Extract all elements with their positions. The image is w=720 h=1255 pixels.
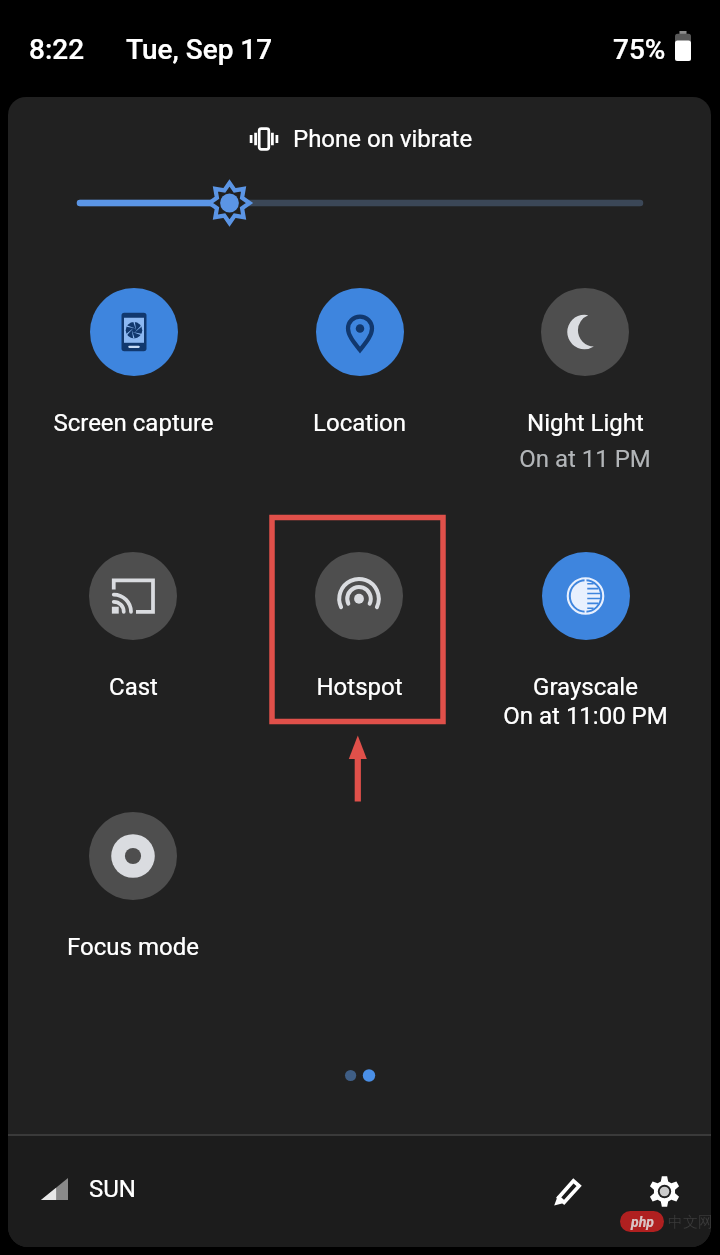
- staticText: Focus mode: [67, 933, 199, 961]
- button[interactable]: Cast: [20, 552, 246, 732]
- staticText: Grayscale: [533, 673, 638, 701]
- staticText: On at 11:00 PM: [503, 702, 668, 730]
- button[interactable]: Hotspot: [246, 552, 472, 732]
- staticText: Tue, Sep 17: [126, 33, 273, 66]
- button[interactable]: Night Light: [472, 288, 698, 468]
- button[interactable]: Grayscale: [472, 552, 698, 732]
- button[interactable]: Edit tiles: [538, 1161, 598, 1221]
- button[interactable]: Screen capture: [20, 288, 246, 468]
- staticText: 中文网: [668, 1213, 711, 1232]
- staticText: SUN: [89, 1175, 136, 1203]
- staticText: Night Light: [527, 409, 644, 437]
- button[interactable]: Location: [246, 288, 472, 468]
- staticText: Location: [313, 409, 406, 437]
- staticText: 8:22: [29, 33, 85, 66]
- staticText: 75%: [613, 33, 666, 66]
- staticText: Phone on vibrate: [293, 125, 473, 153]
- staticText: php: [631, 1214, 654, 1230]
- staticText: Cast: [109, 673, 158, 701]
- button[interactable]: Focus mode: [20, 812, 246, 992]
- button[interactable]: Settings: [634, 1161, 694, 1221]
- staticText: Hotspot: [316, 673, 403, 701]
- staticText: On at 11 PM: [519, 445, 651, 468]
- staticText: Screen capture: [53, 409, 214, 437]
